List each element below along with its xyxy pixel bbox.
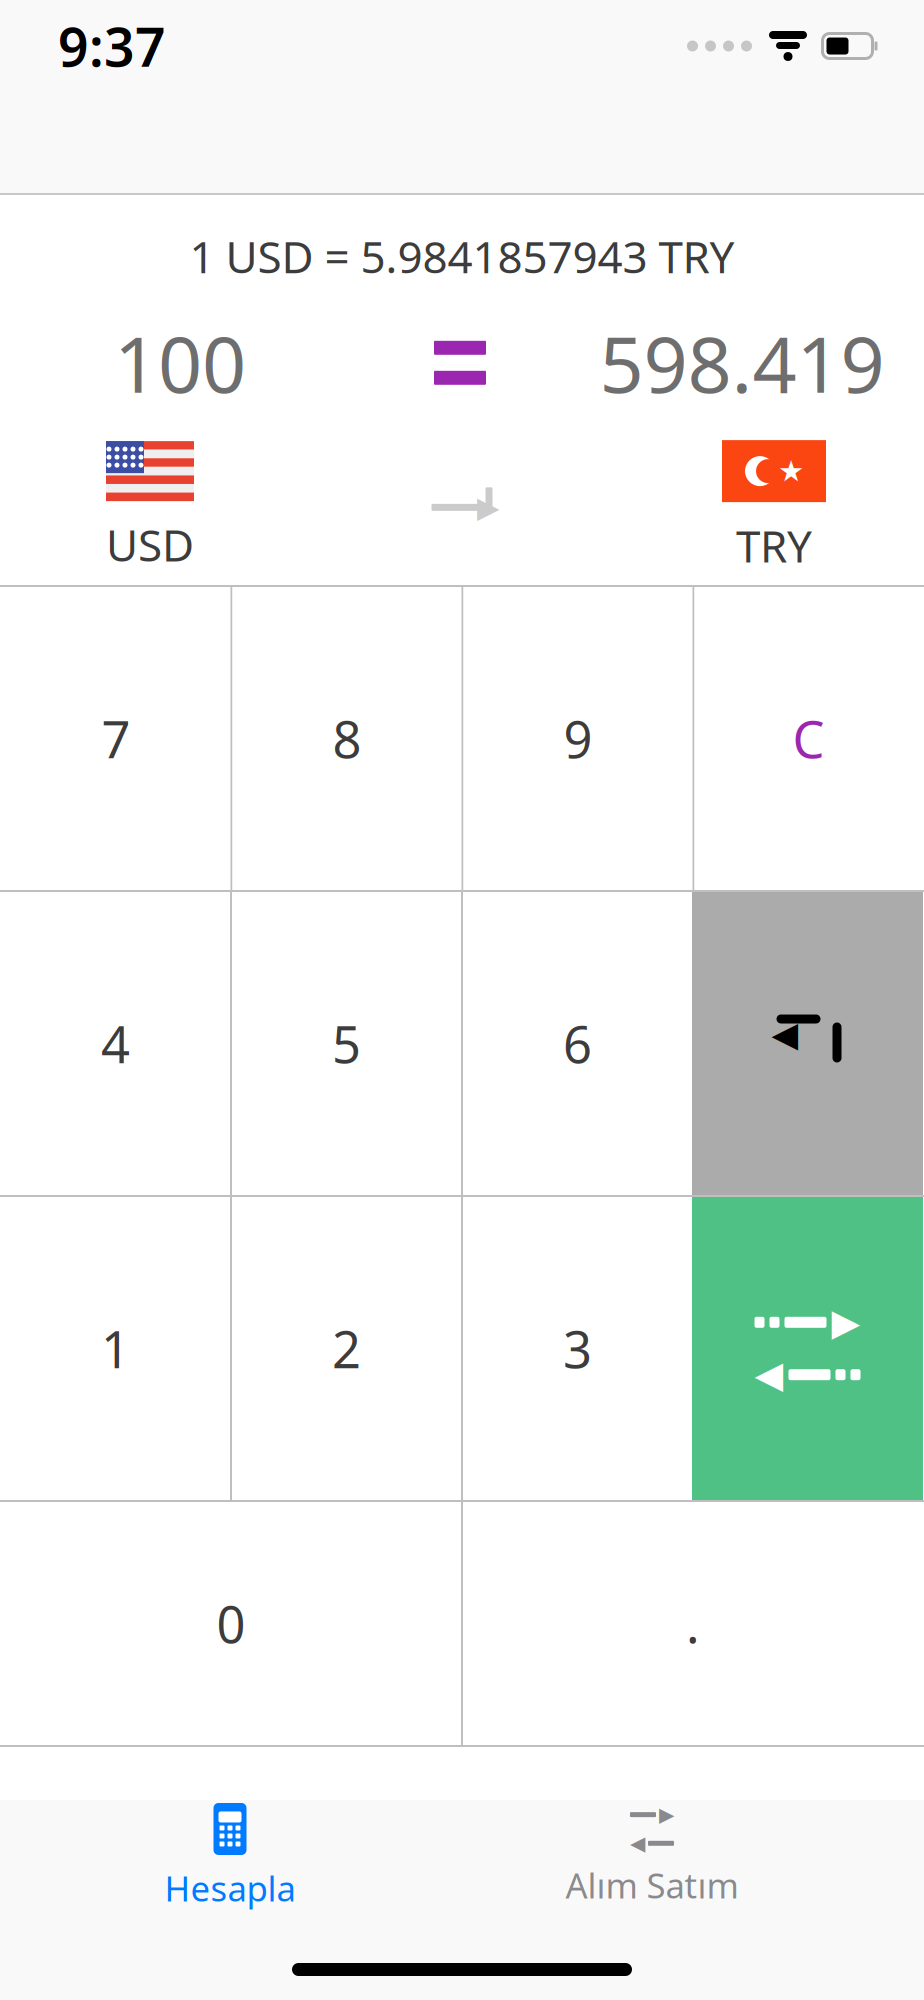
button[interactable]: 8 [232, 587, 461, 890]
button[interactable]: Backspace [692, 892, 923, 1195]
staticText: 2 [332, 1315, 361, 1382]
staticText: 3 [563, 1315, 592, 1382]
button[interactable]: 1 [1, 1197, 230, 1500]
staticText: 9 [563, 705, 592, 772]
staticText: ◀ [771, 1014, 798, 1054]
button[interactable]: 0 [1, 1502, 461, 1745]
staticText: 1 USD = 5.9841857943 TRY [189, 227, 734, 285]
button[interactable]: USD [0, 441, 300, 573]
button[interactable]: Swap direction [300, 477, 624, 537]
staticText: ◀ [754, 1353, 783, 1396]
staticText: 6 [563, 1010, 592, 1077]
button[interactable]: C [694, 587, 922, 890]
staticText: ▶ [477, 491, 500, 524]
button[interactable]: ▶ [502, 1800, 802, 1912]
button[interactable]: 7 [1, 587, 230, 890]
button[interactable]: . [463, 1502, 923, 1745]
staticText: TRY [736, 516, 812, 574]
staticText: 5 [332, 1010, 361, 1077]
button[interactable]: Hesapla [80, 1800, 380, 1912]
button[interactable]: 2 [232, 1197, 461, 1500]
staticText: 9:37 [58, 11, 166, 81]
button[interactable]: 4 [1, 892, 230, 1195]
staticText: 0 [216, 1590, 245, 1657]
staticText: 8 [332, 705, 361, 772]
button[interactable]: 5 [232, 892, 461, 1195]
button[interactable]: 6 [463, 892, 692, 1195]
staticText: ▶ [831, 1301, 860, 1343]
button[interactable]: 3 [463, 1197, 692, 1500]
staticText: 4 [101, 1010, 130, 1077]
button[interactable]: Convert [692, 1197, 923, 1500]
staticText: ▶ [659, 1803, 674, 1826]
button[interactable]: ★ [624, 440, 924, 574]
staticText: ★ [778, 454, 804, 488]
staticText: 1 [101, 1315, 130, 1382]
staticText: ◀ [630, 1832, 645, 1855]
staticText: USD [106, 515, 194, 573]
staticText: Alım Satım [565, 1862, 738, 1908]
staticText: . [686, 1590, 700, 1657]
staticText: Hesapla [164, 1865, 295, 1911]
staticText: 7 [101, 705, 130, 772]
button[interactable]: 9 [463, 587, 692, 890]
staticText: C [792, 705, 824, 772]
staticText: 598.419 [599, 311, 884, 414]
staticText: 100 [114, 311, 246, 414]
